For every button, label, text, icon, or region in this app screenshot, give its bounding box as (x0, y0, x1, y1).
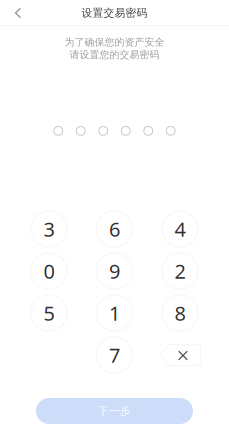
staticText: 9 (109, 258, 120, 284)
button[interactable]: 4 (162, 211, 198, 247)
staticText: 设置交易密码 (81, 6, 147, 20)
staticText: 8 (174, 300, 185, 326)
staticText: 7 (109, 342, 120, 368)
button[interactable]: 8 (162, 295, 198, 331)
staticText: 为了确保您的资产安全 (64, 36, 164, 48)
button[interactable]: 2 (162, 253, 198, 289)
staticText: 下一步 (98, 404, 131, 417)
staticText: 4 (174, 216, 185, 242)
staticText: 6 (109, 216, 120, 242)
staticText: 3 (43, 216, 54, 242)
staticText: 2 (174, 258, 185, 284)
button[interactable]: Back (0, 0, 36, 26)
button[interactable]: 3 (31, 211, 67, 247)
button[interactable]: 7 (96, 337, 132, 373)
button[interactable]: 下一步 (36, 398, 193, 424)
staticText: 请设置您的交易密码 (69, 48, 159, 61)
button[interactable]: 0 (31, 253, 67, 289)
button[interactable]: 1 (96, 295, 132, 331)
staticText: 5 (43, 300, 54, 326)
staticText: 1 (109, 300, 120, 326)
button[interactable]: 9 (96, 253, 132, 289)
staticText: 0 (43, 258, 54, 284)
button[interactable]: 6 (96, 211, 132, 247)
button[interactable]: 5 (31, 295, 67, 331)
button[interactable]: Delete (162, 337, 198, 373)
